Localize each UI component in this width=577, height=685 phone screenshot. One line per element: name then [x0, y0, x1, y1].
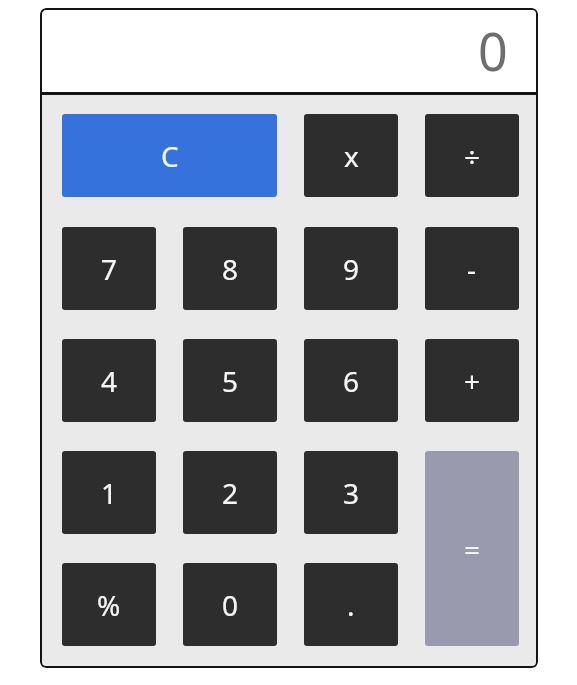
button[interactable]: ÷ — [425, 114, 519, 197]
button[interactable]: 6 — [304, 339, 398, 422]
staticText: + — [464, 362, 481, 400]
staticText: 2 — [222, 474, 239, 512]
button[interactable]: = — [425, 451, 519, 646]
staticText: . — [347, 586, 355, 624]
button[interactable]: 7 — [62, 227, 156, 310]
button[interactable]: 9 — [304, 227, 398, 310]
staticText: 0 — [222, 586, 239, 624]
staticText: - — [467, 250, 477, 288]
button[interactable]: + — [425, 339, 519, 422]
staticText: 4 — [101, 362, 118, 400]
button[interactable]: x — [304, 114, 398, 197]
staticText: 5 — [222, 362, 239, 400]
staticText: 9 — [343, 250, 360, 288]
button[interactable]: 5 — [183, 339, 277, 422]
staticText: 7 — [101, 250, 118, 288]
staticText: 1 — [101, 474, 118, 512]
staticText: C — [161, 137, 179, 175]
button[interactable]: 4 — [62, 339, 156, 422]
staticText: 6 — [343, 362, 360, 400]
button[interactable]: - — [425, 227, 519, 310]
staticText: 3 — [343, 474, 360, 512]
staticText: 8 — [222, 250, 239, 288]
button[interactable]: 3 — [304, 451, 398, 534]
button[interactable]: 8 — [183, 227, 277, 310]
button[interactable]: C — [62, 114, 277, 197]
staticText: % — [97, 586, 121, 624]
staticText: x — [344, 137, 359, 175]
button[interactable]: . — [304, 563, 398, 646]
button[interactable]: 1 — [62, 451, 156, 534]
button[interactable]: % — [62, 563, 156, 646]
staticText: 0 — [478, 15, 508, 86]
staticText: = — [464, 530, 481, 568]
staticText: ÷ — [464, 137, 481, 175]
button[interactable]: 2 — [183, 451, 277, 534]
button[interactable]: 0 — [183, 563, 277, 646]
